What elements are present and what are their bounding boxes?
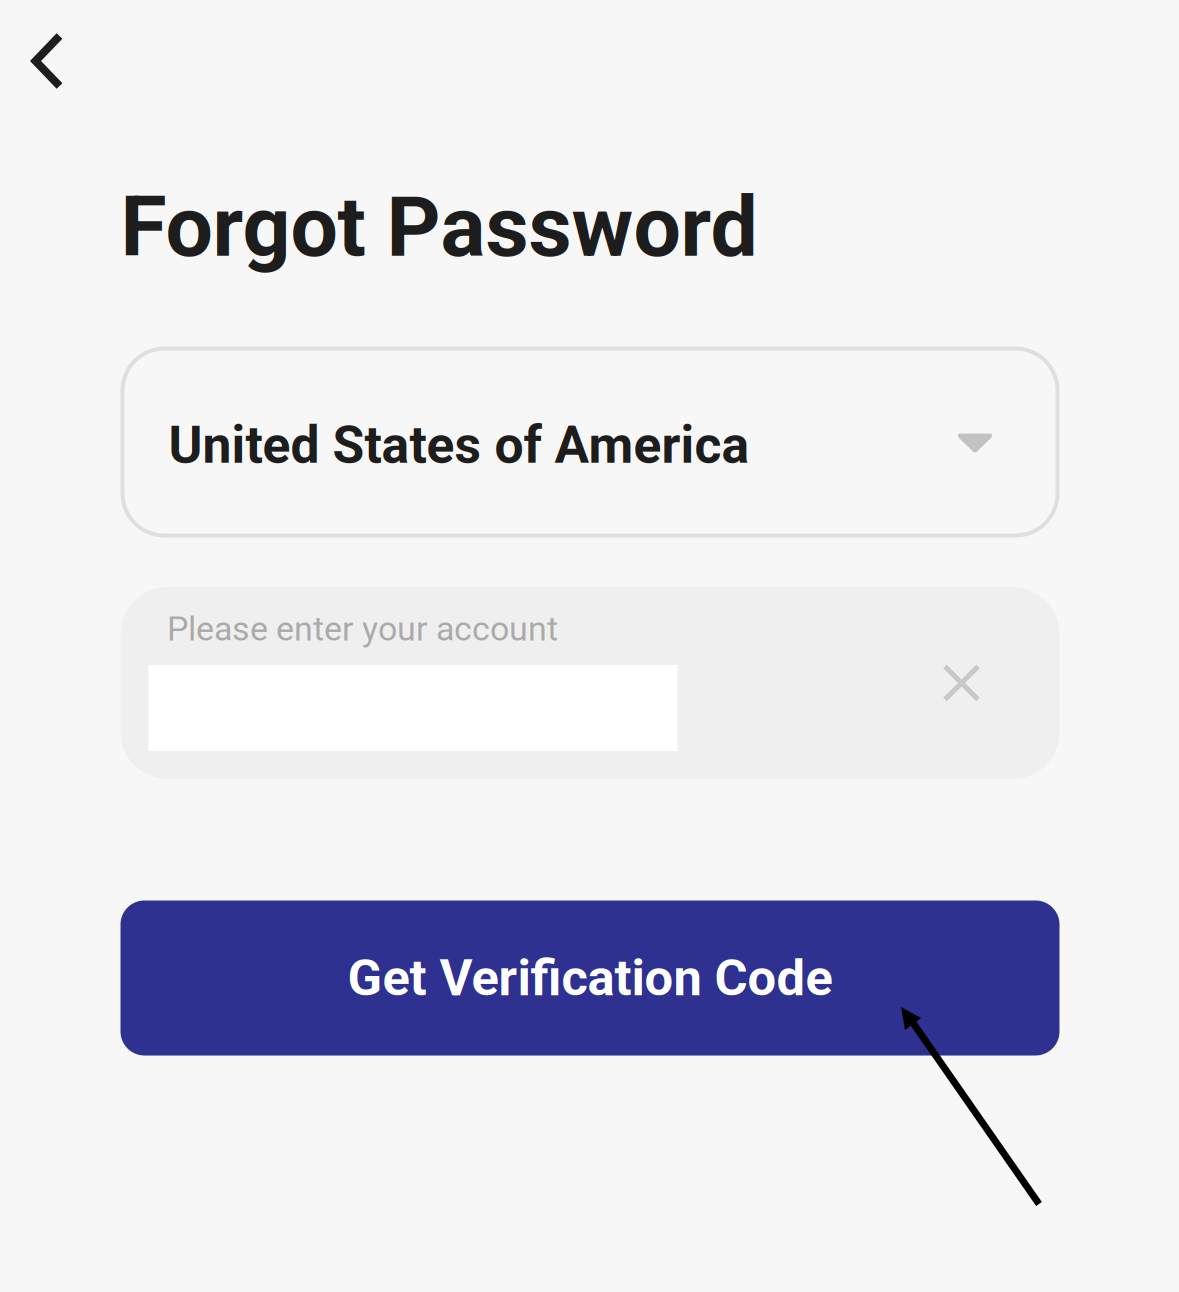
staticText: Please enter your account	[167, 609, 558, 649]
button[interactable]: United States of America	[120, 346, 1059, 537]
button[interactable]: Get Verification Code	[120, 900, 1059, 1055]
staticText: Forgot Password	[120, 178, 757, 276]
button[interactable]: Back	[0, 10, 98, 114]
staticText: Get Verification Code	[347, 948, 832, 1008]
staticText: United States of America	[168, 415, 749, 475]
